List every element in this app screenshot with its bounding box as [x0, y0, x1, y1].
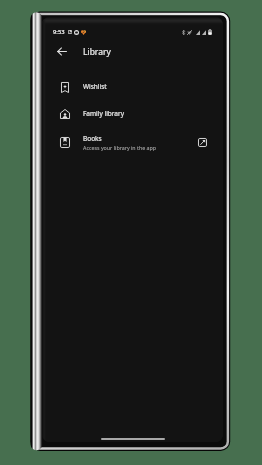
button[interactable]: Wishlist [42, 73, 223, 100]
staticText: Library [83, 46, 111, 58]
staticText: Family library [83, 109, 125, 118]
button[interactable]: Books [42, 127, 223, 157]
staticText: Access your library in the app [83, 144, 157, 151]
staticText: Wishlist [83, 82, 107, 91]
staticText: Books [83, 134, 102, 143]
button[interactable]: Family library [42, 100, 223, 127]
button[interactable]: Back [51, 40, 73, 62]
button[interactable]: Open Books in app [195, 135, 209, 149]
staticText: 9:53 [53, 28, 65, 36]
